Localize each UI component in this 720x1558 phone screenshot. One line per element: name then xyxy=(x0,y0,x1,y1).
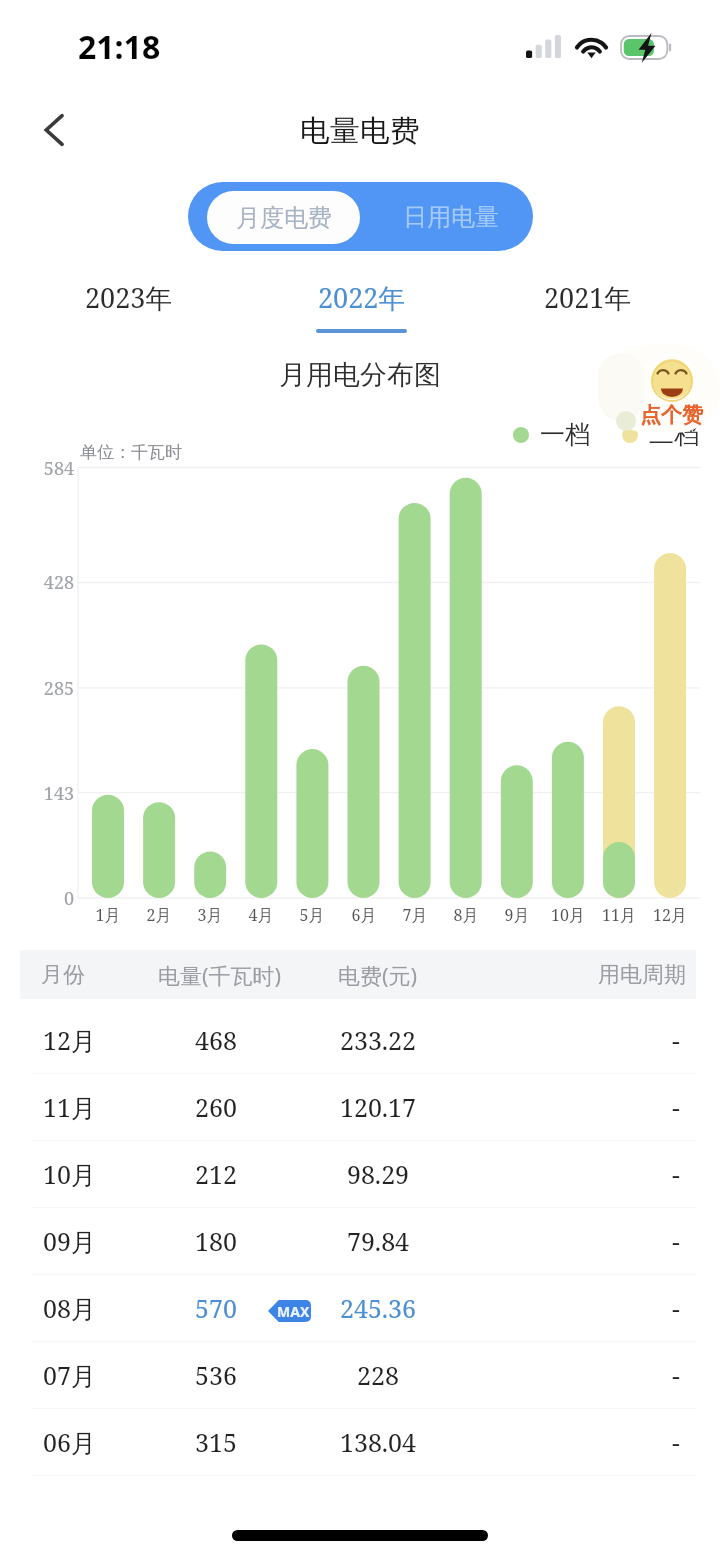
staticText: 2月 xyxy=(134,904,184,926)
staticText: 584 xyxy=(10,456,74,481)
staticText: 日用电量 xyxy=(403,202,499,232)
staticText: 79.84 xyxy=(298,1224,458,1258)
staticText: 电费(元) xyxy=(338,960,418,990)
staticText: 260 xyxy=(161,1090,271,1124)
button[interactable]: 2021年 xyxy=(528,279,648,339)
staticText: 12月 xyxy=(43,1023,96,1057)
staticText: 120.17 xyxy=(298,1090,458,1124)
staticText: 6月 xyxy=(339,904,389,926)
staticText: 143 xyxy=(10,781,74,806)
staticText: 11月 xyxy=(594,904,644,926)
staticText: - xyxy=(672,1157,680,1191)
staticText: 98.29 xyxy=(298,1157,458,1191)
staticText: - xyxy=(672,1224,680,1258)
staticText: MAX xyxy=(277,1302,310,1321)
staticText: 245.36 xyxy=(298,1291,458,1325)
staticText: 2021年 xyxy=(544,279,632,316)
button[interactable]: 2023年 xyxy=(69,279,189,339)
staticText: 468 xyxy=(161,1023,271,1057)
staticText: 07月 xyxy=(43,1358,96,1392)
staticText: 二档 xyxy=(649,419,699,450)
staticText: 08月 xyxy=(43,1291,96,1325)
staticText: 电量电费 xyxy=(300,112,420,150)
staticText: 10月 xyxy=(543,904,593,926)
staticText: 228 xyxy=(298,1358,458,1392)
staticText: 7月 xyxy=(390,904,440,926)
staticText: 212 xyxy=(161,1157,271,1191)
staticText: 21:18 xyxy=(78,25,161,69)
button[interactable]: 08月 xyxy=(20,1274,696,1341)
button[interactable]: 10月 xyxy=(20,1140,696,1207)
staticText: 3月 xyxy=(185,904,235,926)
staticText: 月度电费 xyxy=(236,203,332,233)
staticText: 8月 xyxy=(441,904,491,926)
staticText: 一档 xyxy=(540,419,590,450)
button[interactable]: 月度电费 xyxy=(207,191,360,244)
button[interactable]: 点个赞 xyxy=(596,341,720,441)
button[interactable]: 2022年 xyxy=(301,279,421,339)
staticText: 月用电分布图 xyxy=(279,358,441,392)
staticText: 月份 xyxy=(41,961,85,989)
button[interactable]: 09月 xyxy=(20,1207,696,1274)
button[interactable]: 06月 xyxy=(20,1408,696,1475)
staticText: - xyxy=(672,1090,680,1124)
staticText: 4月 xyxy=(236,904,286,926)
staticText: 用电周期 xyxy=(598,961,686,989)
staticText: 单位：千瓦时 xyxy=(80,442,182,463)
staticText: 536 xyxy=(161,1358,271,1392)
staticText: 12月 xyxy=(645,904,695,926)
staticText: 06月 xyxy=(43,1425,96,1459)
staticText: 5月 xyxy=(287,904,337,926)
staticText: 09月 xyxy=(43,1224,96,1258)
staticText: 138.04 xyxy=(298,1425,458,1459)
staticText: - xyxy=(672,1023,680,1057)
button[interactable]: 日用电量 xyxy=(368,182,533,251)
button[interactable]: 07月 xyxy=(20,1341,696,1408)
staticText: 电量(千瓦时) xyxy=(158,960,282,990)
staticText: 428 xyxy=(10,570,74,595)
staticText: 180 xyxy=(161,1224,271,1258)
staticText: 2022年 xyxy=(318,279,406,316)
button[interactable]: Back xyxy=(26,102,82,158)
button[interactable]: 11月 xyxy=(20,1073,696,1140)
staticText: 10月 xyxy=(43,1157,96,1191)
staticText: 1月 xyxy=(83,904,133,926)
staticText: 315 xyxy=(161,1425,271,1459)
staticText: 233.22 xyxy=(298,1023,458,1057)
staticText: 9月 xyxy=(492,904,542,926)
staticText: 0 xyxy=(10,886,74,911)
staticText: 11月 xyxy=(43,1090,96,1124)
staticText: 570 xyxy=(161,1291,271,1325)
button[interactable]: 12月 xyxy=(20,1006,696,1073)
staticText: - xyxy=(672,1425,680,1459)
staticText: - xyxy=(672,1291,680,1325)
staticText: 点个赞 xyxy=(640,402,703,428)
staticText: 2023年 xyxy=(85,279,173,316)
staticText: - xyxy=(672,1358,680,1392)
staticText: 285 xyxy=(10,676,74,701)
